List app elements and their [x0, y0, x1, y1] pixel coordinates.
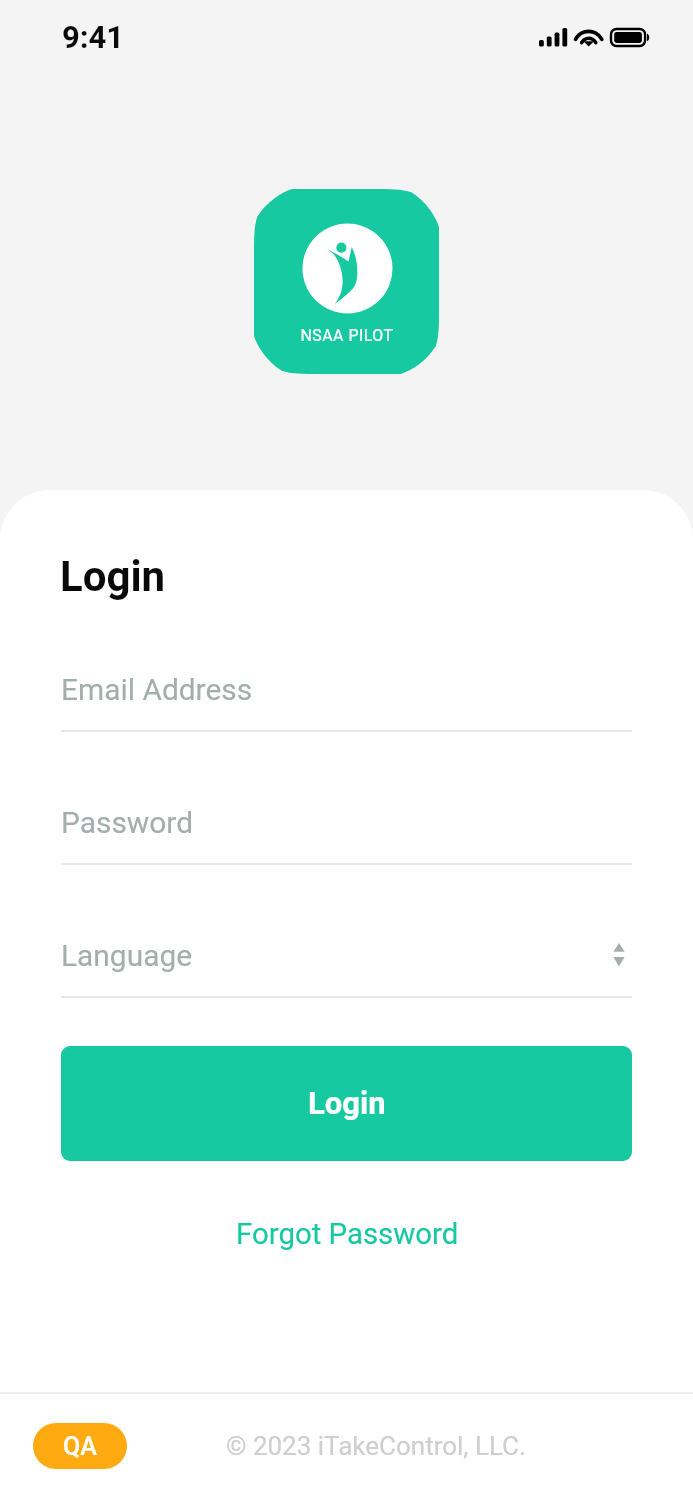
other: NSAA Pilot app logo: [254, 189, 439, 374]
other: Signal, Wi-Fi and battery status: [535, 20, 660, 52]
button[interactable]: Email Address: [61, 658, 632, 732]
staticText: Password: [61, 805, 194, 840]
button[interactable]: QA: [33, 1423, 127, 1469]
staticText: Email Address: [61, 672, 253, 707]
other: Select language: [611, 943, 627, 967]
staticText: 9:41: [62, 19, 125, 55]
staticText: NSAA PILOT: [300, 326, 394, 345]
staticText: QA: [63, 1432, 97, 1461]
button[interactable]: Language: [61, 924, 632, 998]
button[interactable]: Login: [61, 1046, 632, 1161]
staticText: Language: [61, 938, 193, 973]
button[interactable]: Password: [61, 791, 632, 865]
staticText: Forgot Password: [236, 1217, 459, 1251]
staticText: Login: [308, 1085, 386, 1121]
staticText: © 2023 iTakeControl, LLC.: [226, 1431, 526, 1461]
staticText: Login: [60, 552, 166, 601]
button[interactable]: Forgot Password: [0, 1210, 693, 1270]
